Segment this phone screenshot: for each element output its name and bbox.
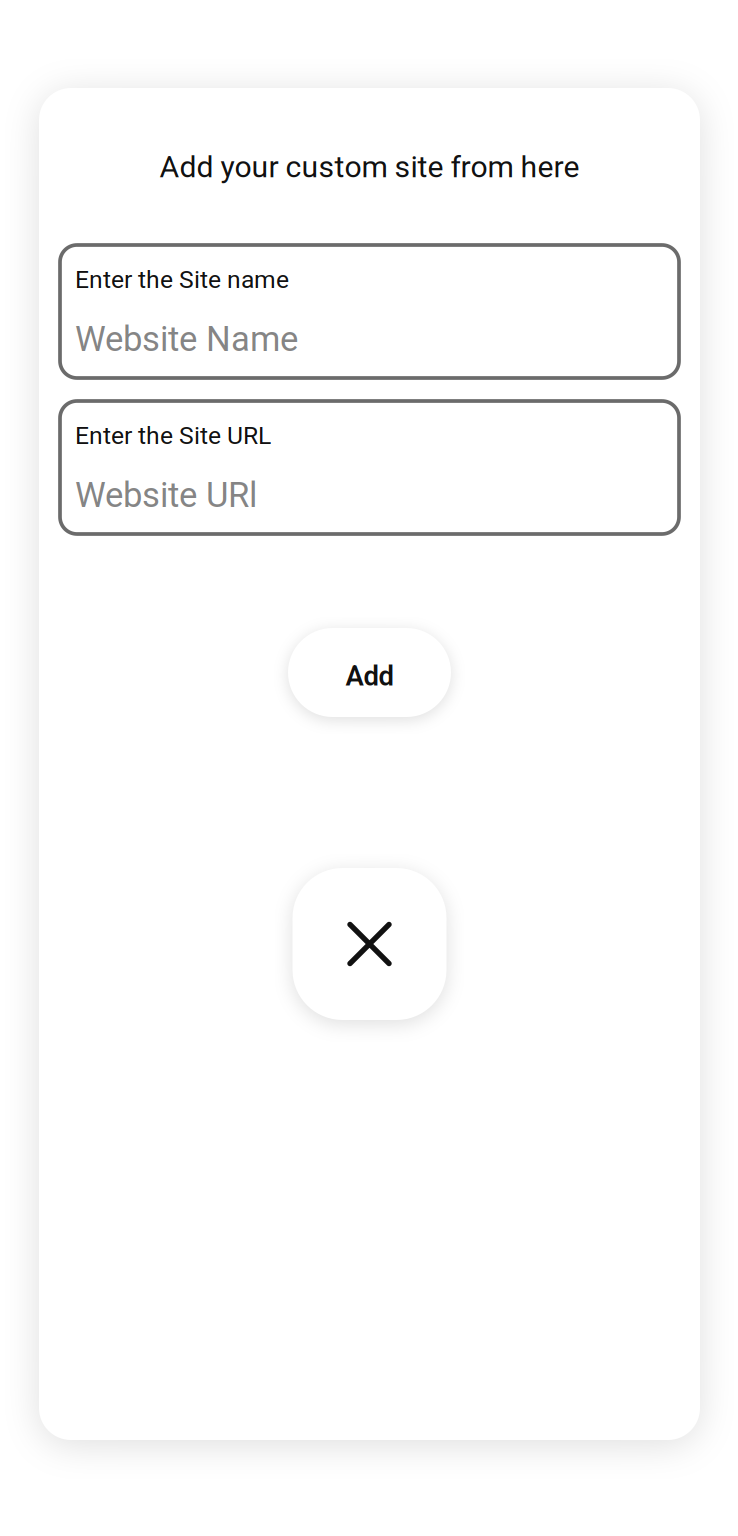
- button[interactable]: Close: [292, 868, 446, 1020]
- staticText: Add your custom site from here: [159, 149, 579, 185]
- button[interactable]: Enter the Site URL: [60, 401, 679, 534]
- button[interactable]: Enter the Site name: [60, 245, 679, 378]
- staticText: Website URl: [75, 475, 257, 515]
- staticText: Enter the Site name: [75, 265, 289, 294]
- button[interactable]: Add: [288, 628, 451, 717]
- staticText: Enter the Site URL: [75, 421, 271, 450]
- staticText: Add: [345, 660, 393, 692]
- staticText: Website Name: [75, 319, 298, 359]
